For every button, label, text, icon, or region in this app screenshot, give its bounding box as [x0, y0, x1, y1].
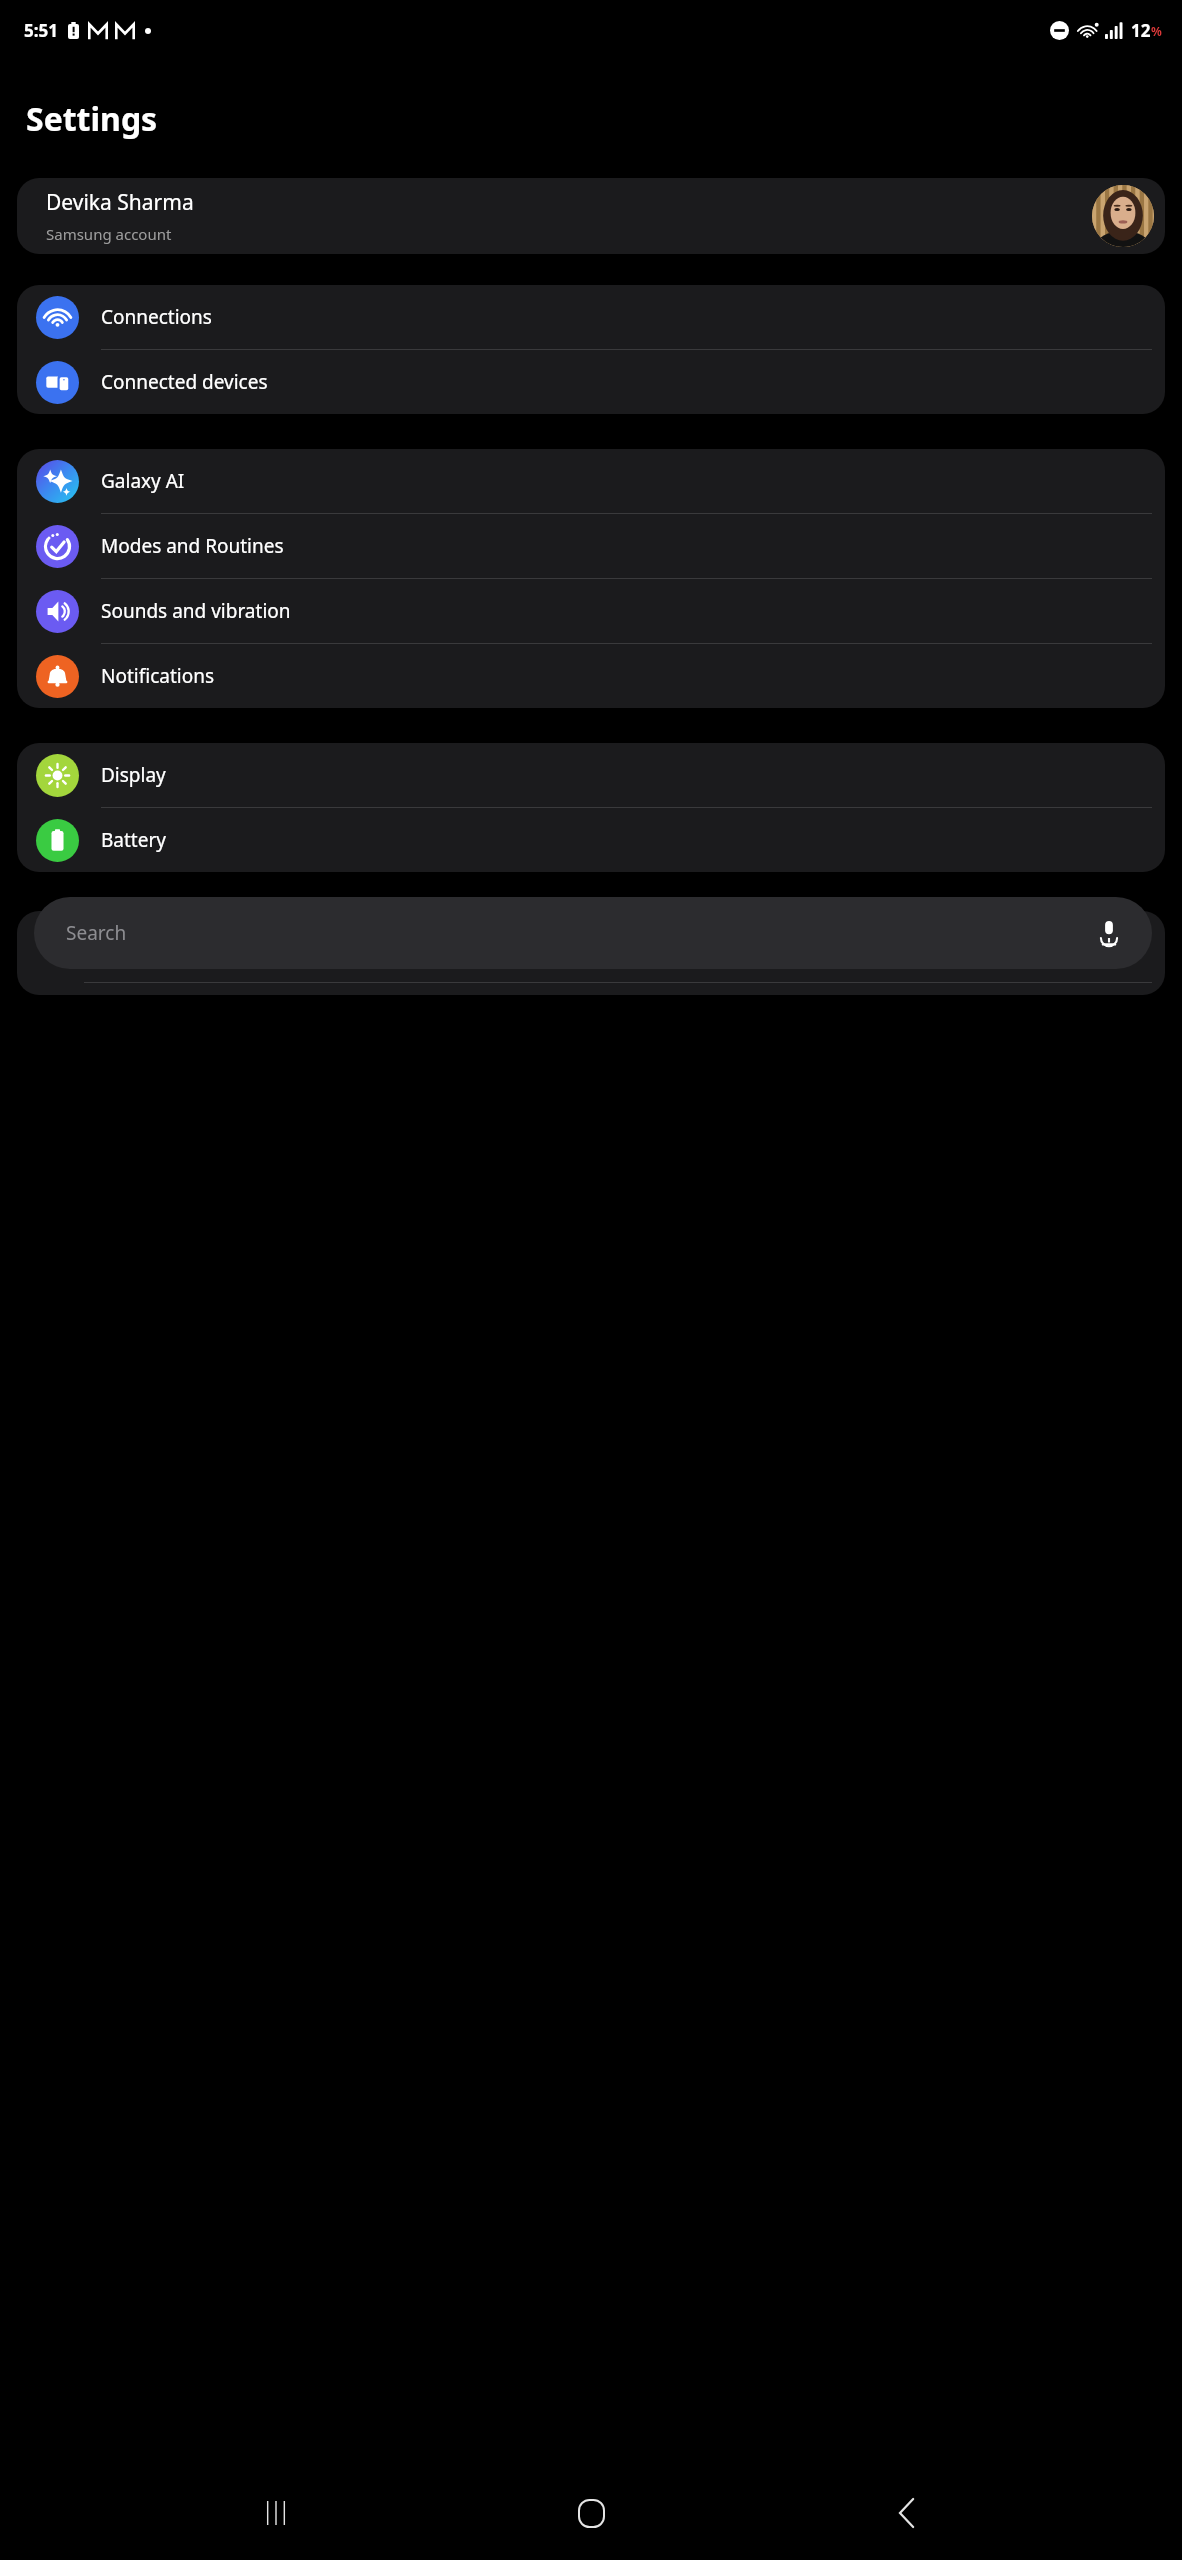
button[interactable]: Recents: [236, 2473, 316, 2553]
button[interactable]: Modes and Routines: [17, 514, 1165, 579]
button[interactable]: Galaxy AI: [17, 449, 1165, 514]
staticText: 5:51: [24, 19, 58, 42]
button[interactable]: Sounds and vibration: [17, 579, 1165, 644]
other: Profile photo: [1092, 185, 1154, 247]
staticText: Connections: [101, 304, 212, 330]
button[interactable]: Notifications: [17, 644, 1165, 708]
button[interactable]: Back: [867, 2473, 947, 2553]
button[interactable]: Devika Sharma: [17, 178, 1165, 254]
staticText: %: [1151, 23, 1162, 39]
button[interactable]: Connections: [17, 285, 1165, 350]
staticText: Battery: [101, 827, 166, 853]
staticText: Connected devices: [101, 369, 268, 395]
button[interactable]: Home: [551, 2473, 631, 2553]
button[interactable]: Connected devices: [17, 350, 1165, 414]
staticText: Devika Sharma: [46, 188, 194, 217]
staticText: 12: [1131, 19, 1151, 42]
button[interactable]: Voice search: [1092, 916, 1126, 950]
staticText: Notifications: [101, 663, 215, 689]
button[interactable]: Display: [17, 743, 1165, 808]
staticText: Galaxy AI: [101, 468, 185, 494]
button[interactable]: Battery: [17, 808, 1165, 872]
staticText: Samsung account: [46, 224, 172, 244]
button[interactable]: Search: [34, 897, 1152, 969]
staticText: Modes and Routines: [101, 533, 284, 559]
staticText: Display: [101, 762, 166, 788]
staticText: Settings: [26, 97, 158, 141]
staticText: Search: [66, 920, 1092, 946]
staticText: Sounds and vibration: [101, 598, 291, 624]
